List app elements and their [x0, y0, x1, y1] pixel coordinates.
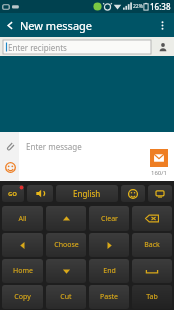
staticText: Back	[144, 240, 160, 250]
button[interactable]: Enter recipients	[3, 40, 151, 54]
button[interactable]: SPACE	[132, 259, 172, 283]
staticText: 16:38	[150, 1, 171, 12]
staticText: Cut	[60, 292, 72, 302]
staticText: English	[73, 188, 101, 199]
button[interactable]: English	[56, 185, 118, 202]
button[interactable]: Send	[150, 149, 168, 167]
button[interactable]: DOWN	[46, 259, 86, 283]
button[interactable]: speaker	[27, 185, 53, 202]
button[interactable]: End	[89, 259, 129, 283]
button[interactable]: All	[2, 206, 43, 231]
button[interactable]: LEFT	[2, 233, 43, 257]
button[interactable]: Copy	[2, 285, 43, 309]
button[interactable]: Home	[2, 259, 43, 283]
button[interactable]: smiley	[121, 185, 145, 202]
staticText: Enter message	[26, 141, 82, 152]
button[interactable]: keyboard	[148, 185, 172, 202]
staticText: Clear	[101, 214, 118, 224]
button[interactable]: Enter message	[19, 132, 144, 181]
button[interactable]: Tab	[132, 285, 172, 309]
button[interactable]: DEL	[132, 206, 172, 231]
staticText: Tab	[146, 292, 158, 302]
button[interactable]: Attach	[3, 139, 17, 153]
button[interactable]: More options	[150, 13, 174, 37]
button[interactable]: Choose	[46, 233, 86, 257]
staticText: 22%	[133, 3, 143, 10]
staticText: Paste	[100, 292, 118, 302]
button[interactable]: RIGHT	[89, 233, 129, 257]
staticText: Copy	[14, 292, 31, 302]
button[interactable]: Add contact	[155, 40, 171, 54]
staticText: Choose	[54, 240, 79, 250]
staticText: Home	[13, 266, 33, 276]
staticText: All	[18, 214, 27, 224]
button[interactable]: Cut	[46, 285, 86, 309]
staticText: 160/1	[151, 169, 167, 177]
button[interactable]: Emoticons	[3, 160, 17, 174]
button[interactable]: Paste	[89, 285, 129, 309]
staticText: GO	[8, 190, 18, 198]
staticText: New message	[20, 18, 93, 33]
staticText: End	[103, 266, 116, 276]
button[interactable]: Back	[0, 15, 20, 35]
button[interactable]: Back	[132, 233, 172, 257]
button[interactable]: Clear	[89, 206, 129, 231]
button[interactable]: GO	[2, 185, 24, 202]
button[interactable]: UP	[46, 206, 86, 231]
staticText: Enter recipients	[8, 42, 67, 53]
